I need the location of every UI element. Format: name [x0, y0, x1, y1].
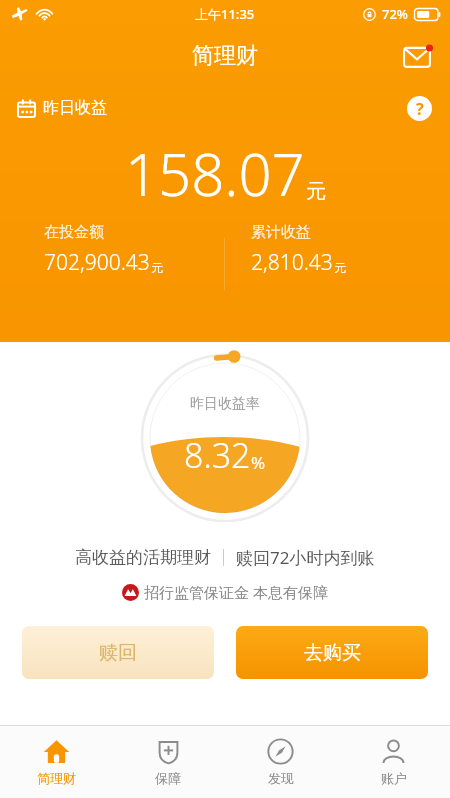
- staticText: 2,810.43: [251, 248, 333, 277]
- staticText: 简理财: [192, 42, 258, 70]
- staticText: 发现: [268, 770, 294, 786]
- staticText: 账户: [381, 770, 407, 786]
- staticText: ?: [416, 98, 424, 120]
- staticText: 昨日收益: [43, 98, 107, 118]
- staticText: 赎回: [99, 641, 137, 665]
- staticText: 累计收益: [251, 223, 311, 242]
- button[interactable]: 去购买: [236, 626, 428, 679]
- staticText: 保障: [155, 770, 181, 786]
- staticText: 去购买: [304, 641, 361, 665]
- button[interactable]: 发现: [224, 726, 337, 798]
- staticText: 简理财: [37, 770, 76, 786]
- staticText: 招行监管保证金 本息有保障: [144, 582, 328, 602]
- button[interactable]: Messages: [394, 33, 440, 79]
- staticText: 72%: [382, 5, 408, 23]
- staticText: %: [251, 451, 266, 474]
- button[interactable]: 账户: [337, 726, 450, 798]
- staticText: 赎回72小时内到账: [236, 546, 375, 569]
- button[interactable]: 保障: [112, 726, 224, 798]
- staticText: 8.32: [184, 432, 251, 478]
- button[interactable]: 赎回: [22, 626, 214, 679]
- staticText: 158.07: [125, 134, 305, 213]
- staticText: 元: [334, 260, 346, 275]
- button[interactable]: 简理财: [0, 726, 112, 798]
- staticText: 高收益的活期理财: [75, 547, 211, 568]
- staticText: 702,900.43: [44, 248, 150, 277]
- staticText: 昨日收益率: [190, 395, 260, 413]
- staticText: 元: [151, 260, 163, 275]
- staticText: 在投金额: [44, 223, 104, 242]
- staticText: 元: [306, 179, 326, 204]
- button[interactable]: Help: [400, 90, 438, 126]
- staticText: 上午11:35: [195, 5, 255, 23]
